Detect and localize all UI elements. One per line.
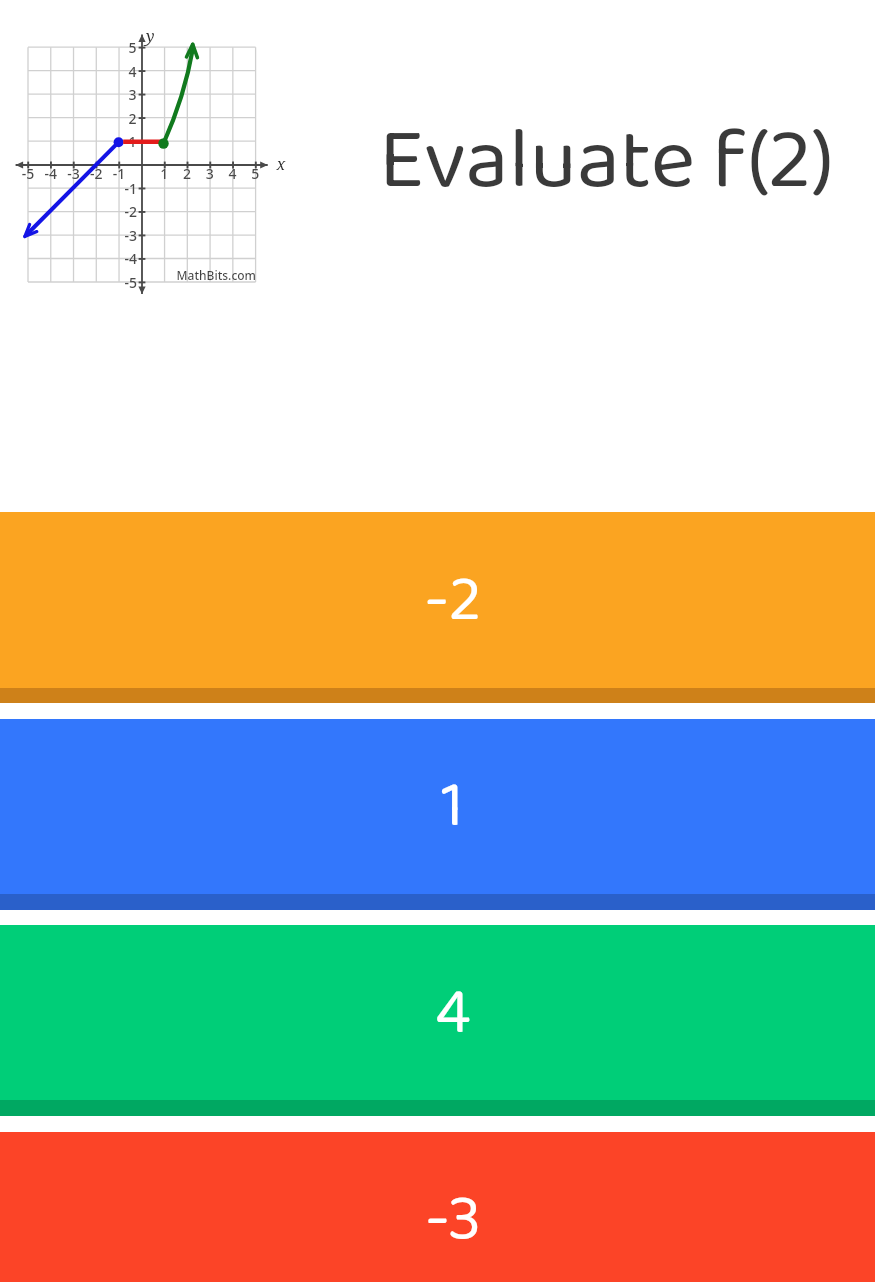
staticText: 4 — [435, 962, 471, 1065]
other: Piecewise function graph — [0, 0, 300, 310]
button[interactable]: 4 — [0, 925, 875, 1116]
staticText: Evaluate f(2) — [379, 93, 835, 231]
staticText: -3 — [425, 1169, 481, 1272]
staticText: 1 — [441, 756, 464, 859]
button[interactable]: -2 — [0, 512, 875, 703]
button[interactable]: 1 — [0, 719, 875, 910]
button[interactable]: -3 — [0, 1132, 875, 1282]
staticText: -2 — [424, 550, 482, 653]
